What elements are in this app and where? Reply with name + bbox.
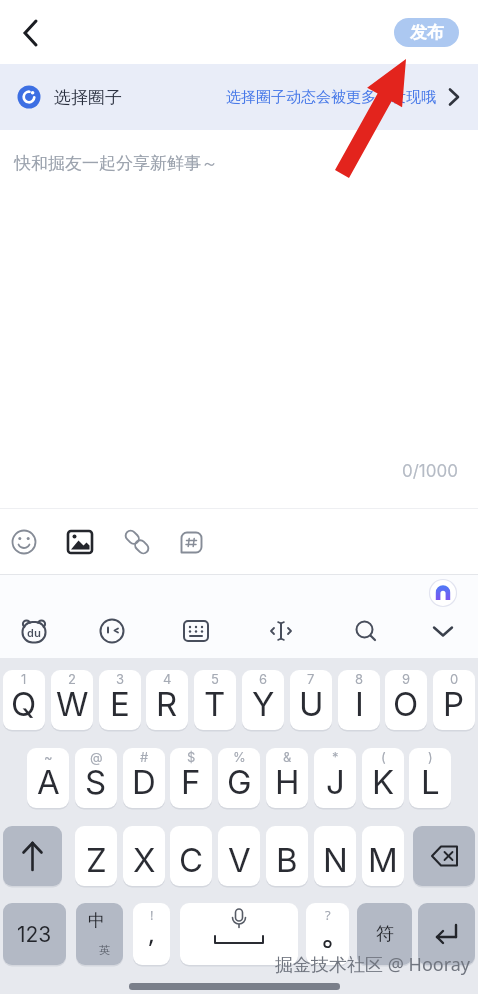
button[interactable]: 123 — [3, 903, 66, 965]
button[interactable]: 中 — [76, 903, 123, 965]
button[interactable]: ? — [306, 903, 349, 965]
button[interactable]: % — [218, 748, 260, 808]
button[interactable]: @ — [75, 748, 117, 808]
staticText: V — [228, 840, 251, 880]
staticText: 选择圈子动态会被更多人发现哦 — [226, 88, 436, 107]
staticText: O — [393, 684, 419, 724]
button[interactable]: N — [314, 826, 356, 886]
button[interactable] — [180, 903, 298, 965]
staticText: J — [326, 762, 345, 802]
staticText: 英 — [99, 943, 110, 957]
button[interactable]: 3 — [99, 670, 141, 730]
button[interactable]: 选择圈子 — [0, 64, 478, 130]
button[interactable] — [6, 524, 42, 560]
staticText: W — [56, 684, 89, 724]
button[interactable]: 8 — [338, 670, 380, 730]
staticText: 0 — [450, 671, 459, 687]
button[interactable]: C — [170, 826, 212, 886]
staticText: 8 — [355, 671, 364, 687]
button[interactable]: ! — [133, 903, 170, 965]
staticText: D — [132, 762, 156, 802]
button[interactable] — [423, 611, 463, 651]
button[interactable]: & — [266, 748, 308, 808]
staticText: $ — [187, 749, 196, 765]
button[interactable]: X — [123, 826, 165, 886]
staticText: 掘金技术社区 @ Hooray — [275, 952, 471, 977]
staticText: 4 — [163, 671, 172, 687]
staticText: B — [276, 840, 298, 880]
button[interactable]: # — [123, 748, 165, 808]
button[interactable]: 9 — [385, 670, 427, 730]
staticText: 2 — [68, 671, 76, 687]
staticText: ) — [428, 749, 433, 765]
button[interactable] — [346, 611, 386, 651]
staticText: R — [156, 684, 178, 724]
staticText: du — [27, 625, 41, 640]
staticText: T — [204, 684, 226, 724]
button[interactable]: 2 — [51, 670, 93, 730]
staticText: G — [227, 762, 252, 802]
staticText: X — [133, 840, 156, 880]
staticText: ! — [150, 906, 154, 924]
button[interactable]: $ — [170, 748, 212, 808]
staticText: Z — [86, 840, 107, 880]
button[interactable]: Z — [75, 826, 117, 886]
staticText: ( — [381, 749, 386, 765]
staticText: % — [233, 749, 246, 765]
staticText: & — [283, 749, 292, 765]
staticText: 0/1000 — [402, 461, 458, 482]
button[interactable]: ) — [409, 748, 451, 808]
button[interactable]: 5 — [194, 670, 236, 730]
staticText: H — [275, 762, 300, 802]
button[interactable] — [119, 524, 155, 560]
staticText: @ — [90, 749, 103, 765]
button[interactable]: 发布 — [394, 18, 459, 47]
staticText: C — [179, 840, 204, 880]
button[interactable] — [418, 903, 475, 965]
staticText: L — [421, 762, 440, 802]
button[interactable]: du — [14, 611, 54, 651]
button[interactable]: 0 — [433, 670, 475, 730]
staticText: ? — [325, 906, 331, 924]
staticText: 5 — [211, 671, 219, 687]
button[interactable] — [429, 579, 457, 607]
staticText: ~ — [44, 749, 53, 765]
staticText: 中 — [88, 910, 105, 931]
button[interactable]: M — [362, 826, 404, 886]
button[interactable]: B — [266, 826, 308, 886]
staticText: 发布 — [410, 22, 444, 43]
button[interactable] — [62, 524, 98, 560]
button[interactable] — [261, 611, 301, 651]
staticText: S — [85, 762, 107, 802]
staticText: 快和掘友一起分享新鲜事～ — [14, 153, 218, 174]
staticText: 7 — [307, 671, 315, 687]
staticText: * — [332, 749, 339, 765]
button[interactable] — [92, 611, 132, 651]
button[interactable]: 1 — [3, 670, 45, 730]
button[interactable] — [173, 524, 210, 561]
button[interactable]: 6 — [242, 670, 284, 730]
staticText: K — [372, 762, 395, 802]
staticText: I — [355, 684, 364, 724]
staticText: 选择圈子 — [54, 87, 122, 108]
button[interactable] — [3, 826, 62, 886]
button[interactable] — [176, 611, 216, 651]
button[interactable]: * — [314, 748, 356, 808]
staticText: N — [323, 840, 348, 880]
staticText: 1 — [21, 671, 27, 687]
button[interactable]: V — [218, 826, 260, 886]
staticText: # — [140, 749, 149, 765]
button[interactable]: 符 — [357, 903, 412, 965]
button[interactable]: ( — [362, 748, 404, 808]
staticText: F — [181, 762, 201, 802]
staticText: M — [368, 840, 398, 880]
staticText: 3 — [116, 671, 125, 687]
button[interactable] — [10, 12, 50, 54]
button[interactable]: 4 — [146, 670, 188, 730]
staticText: 9 — [402, 671, 411, 687]
button[interactable]: ~ — [27, 748, 69, 808]
button[interactable] — [413, 826, 475, 886]
staticText: 6 — [259, 671, 268, 687]
staticText: Q — [11, 684, 37, 724]
button[interactable]: 7 — [290, 670, 332, 730]
